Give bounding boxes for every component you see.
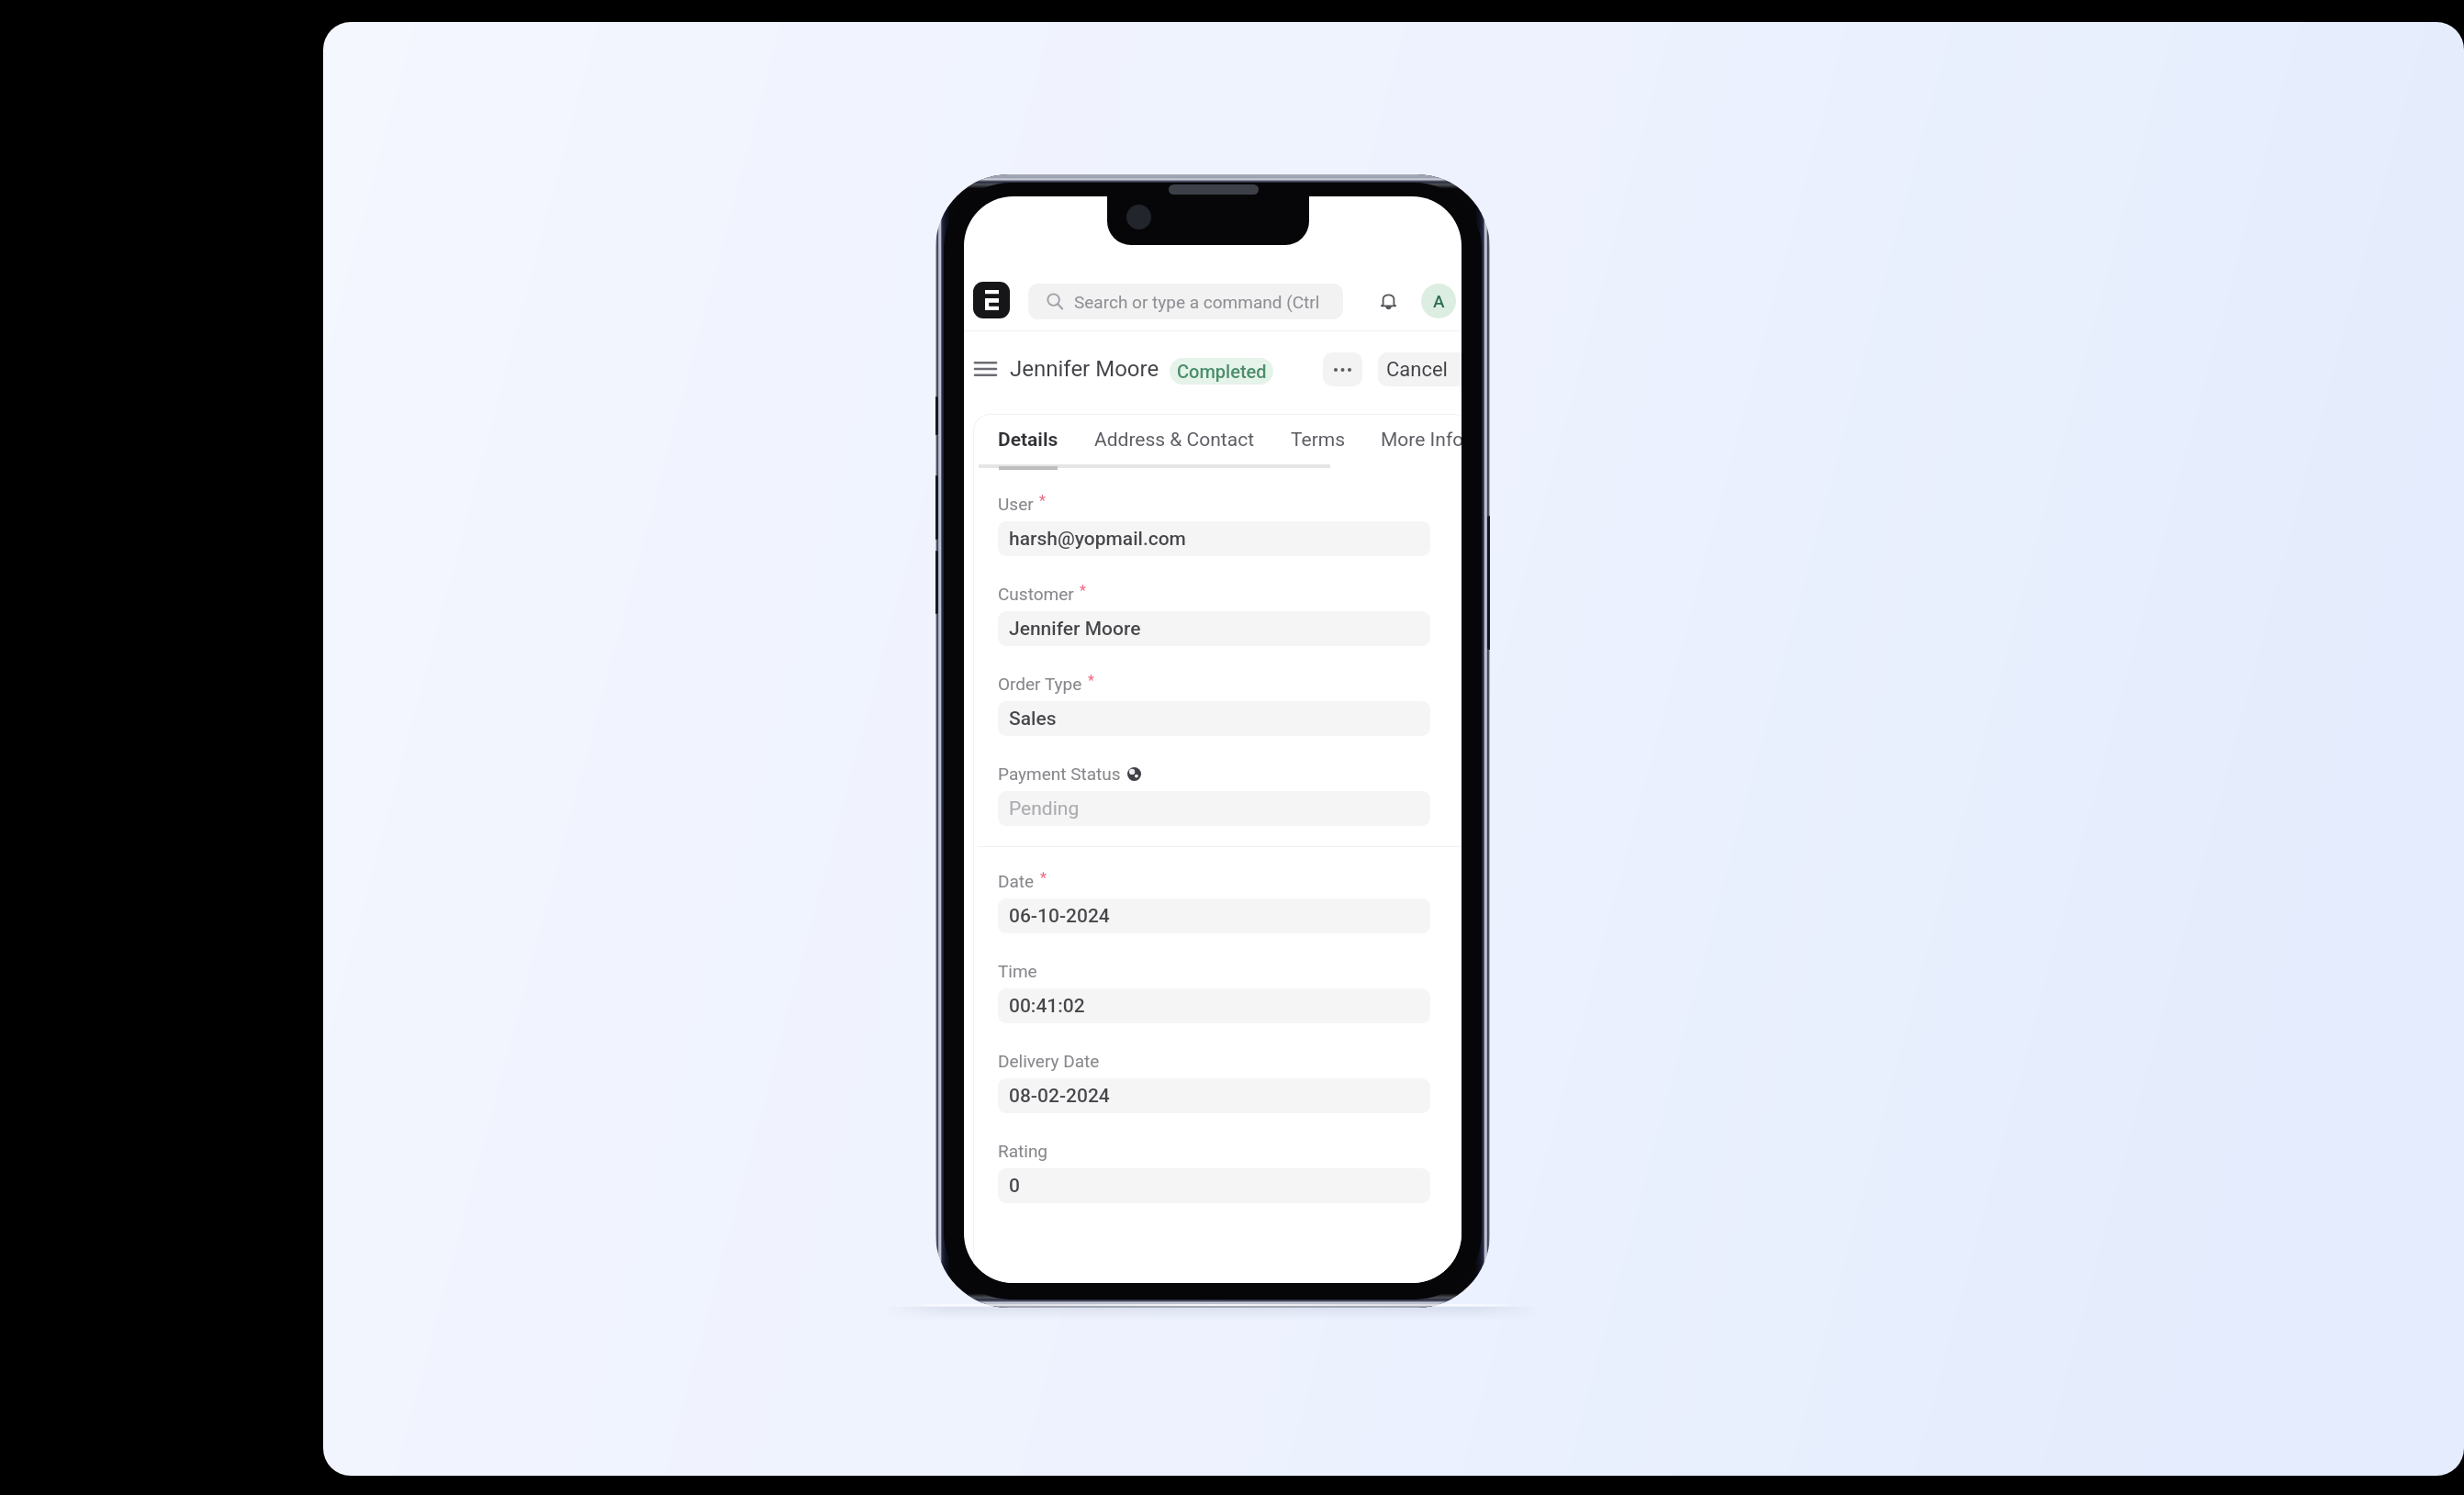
staticText: A	[1433, 291, 1445, 311]
button[interactable]: Account	[1421, 284, 1456, 318]
button[interactable]: Home	[973, 282, 1010, 318]
staticText: harsh@yopmail.com	[1009, 528, 1186, 551]
staticText: Jennifer Moore	[1009, 618, 1141, 641]
button[interactable]: Sales	[998, 701, 1430, 736]
staticText: Date	[998, 871, 1035, 891]
staticText: Customer	[998, 584, 1074, 604]
staticText: *	[1039, 492, 1046, 509]
button[interactable]: Notifications	[1373, 286, 1403, 316]
staticText: *	[1080, 582, 1086, 599]
staticText: 00:41:02	[1009, 995, 1085, 1018]
staticText: *	[1040, 869, 1047, 887]
staticText: Rating	[998, 1141, 1048, 1161]
staticText: Cancel	[1386, 358, 1448, 382]
staticText: Jennifer Moore	[1010, 356, 1159, 382]
staticText: Sales	[1009, 708, 1057, 731]
button[interactable]: Details	[985, 419, 1071, 460]
staticText: Order Type	[998, 674, 1082, 694]
button[interactable]: 08-02-2024	[998, 1078, 1430, 1113]
staticText: Payment Status	[998, 764, 1121, 784]
button[interactable]: More Info	[1368, 419, 1462, 460]
button[interactable]: harsh@yopmail.com	[998, 521, 1430, 556]
button[interactable]: 06-10-2024	[998, 898, 1430, 933]
staticText: Completed	[1177, 361, 1267, 382]
button[interactable]: Cancel	[1378, 352, 1462, 386]
button[interactable]: Search or type a command (Ctrl	[1028, 284, 1343, 319]
staticText: Address & Contact	[1094, 429, 1254, 452]
button[interactable]: Completed	[1170, 358, 1273, 385]
button[interactable]: Menu	[969, 353, 1001, 385]
staticText: More Info	[1381, 429, 1462, 452]
staticText: User	[998, 494, 1034, 514]
staticText: Delivery Date	[998, 1051, 1100, 1071]
button[interactable]: 00:41:02	[998, 988, 1430, 1023]
button[interactable]: Pending	[998, 791, 1430, 826]
staticText: Details	[998, 429, 1058, 452]
staticText: Time	[998, 961, 1037, 981]
staticText: 0	[1009, 1175, 1020, 1198]
button[interactable]: 0	[998, 1168, 1430, 1203]
button[interactable]: Address & Contact	[1081, 419, 1267, 460]
staticText: *	[1088, 672, 1094, 689]
button[interactable]: More options	[1323, 352, 1362, 386]
button[interactable]: Terms	[1278, 419, 1359, 460]
staticText: 08-02-2024	[1009, 1085, 1110, 1108]
staticText: Search or type a command (Ctrl	[1074, 292, 1320, 312]
staticText: Pending	[1009, 798, 1080, 820]
staticText: Terms	[1291, 429, 1346, 452]
button[interactable]: Jennifer Moore	[998, 611, 1430, 646]
staticText: 06-10-2024	[1009, 905, 1110, 928]
